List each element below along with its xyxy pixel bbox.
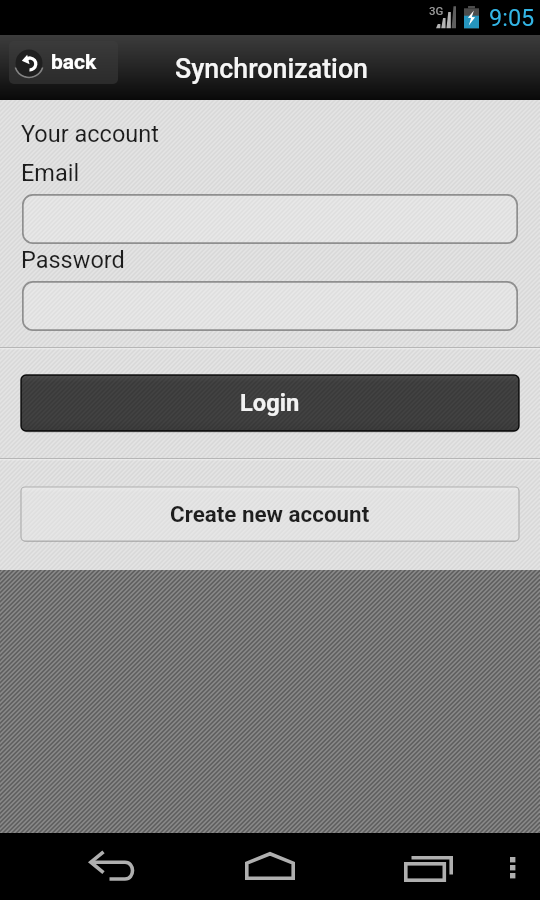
button[interactable]: Home <box>190 833 350 900</box>
button[interactable] <box>22 194 518 244</box>
staticText: 3G <box>429 4 444 17</box>
staticText: Login <box>240 389 300 417</box>
button[interactable]: Back <box>0 833 190 900</box>
staticText: Your account <box>21 120 159 148</box>
staticText: Create new account <box>170 501 370 527</box>
staticText: 9:05 <box>489 4 535 32</box>
button[interactable]: back <box>9 41 118 84</box>
button[interactable]: More options <box>485 833 540 900</box>
staticText: back <box>51 50 97 75</box>
staticText: Email <box>21 159 80 187</box>
button[interactable]: Login <box>21 375 519 431</box>
button[interactable] <box>22 281 518 331</box>
staticText: Synchronization <box>175 53 369 84</box>
button[interactable]: Create new account <box>21 487 519 541</box>
button[interactable]: Recent apps <box>350 833 485 900</box>
staticText: Password <box>21 246 125 274</box>
